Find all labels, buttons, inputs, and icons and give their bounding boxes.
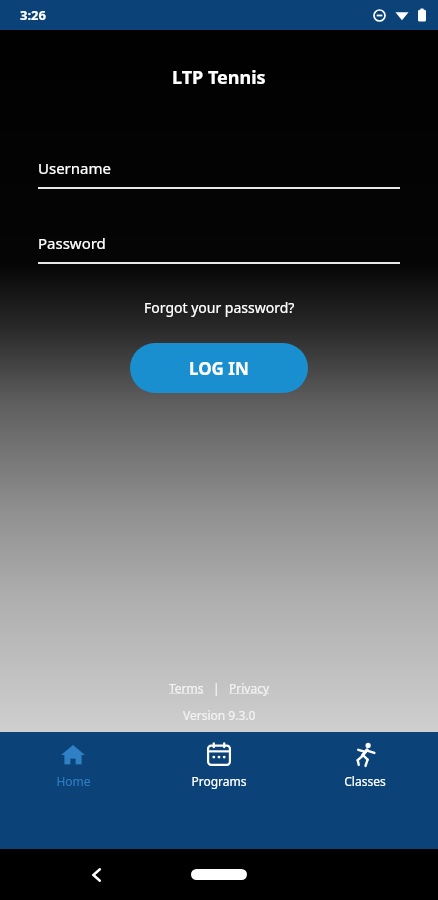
button[interactable]: Forgot your password? (138, 295, 301, 320)
staticText: Version 9.3.0 (183, 707, 256, 723)
staticText: LOG IN (189, 357, 249, 380)
button[interactable]: Home (0, 732, 146, 849)
staticText: LTP Tennis (172, 65, 266, 90)
button[interactable]: LOG IN (130, 343, 308, 393)
other: Classes (352, 742, 378, 768)
button[interactable]: Username (38, 158, 400, 189)
other: Programs (206, 742, 232, 768)
other: Home (60, 742, 86, 768)
staticText: | (213, 680, 220, 696)
staticText: Username (38, 158, 111, 178)
button[interactable]: Password (38, 233, 400, 264)
staticText: Programs (191, 773, 247, 789)
button[interactable]: Privacy (225, 678, 274, 698)
button[interactable]: Terms (165, 678, 208, 698)
staticText: 3:26 (20, 6, 46, 24)
staticText: Password (38, 233, 106, 253)
button[interactable]: Programs (146, 732, 292, 849)
staticText: Classes (344, 773, 386, 789)
button[interactable]: Classes (292, 732, 438, 849)
staticText: Home (56, 773, 91, 789)
